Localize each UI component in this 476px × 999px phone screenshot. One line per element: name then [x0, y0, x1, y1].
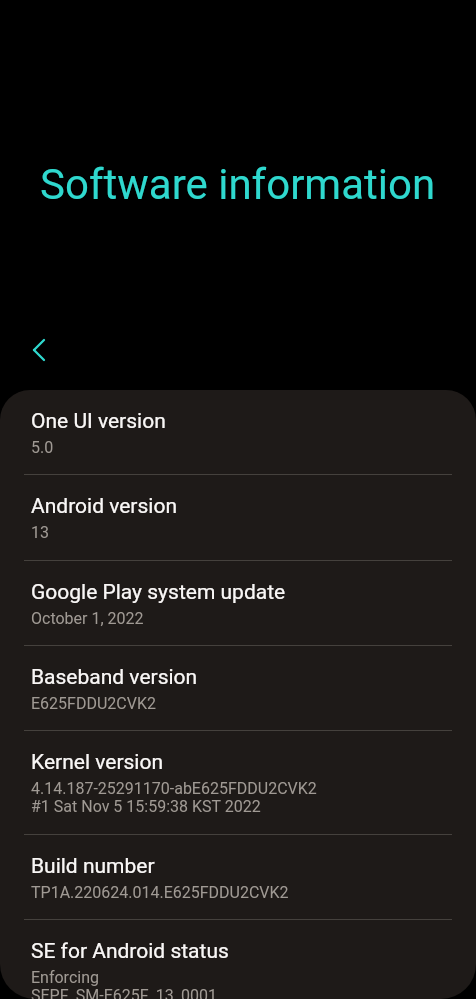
button[interactable]: Google Play system update: [0, 561, 476, 646]
staticText: Build number: [31, 854, 155, 879]
button[interactable]: Baseband version: [0, 646, 476, 731]
staticText: 13: [31, 523, 49, 542]
staticText: Baseband version: [31, 665, 198, 690]
staticText: #1 Sat Nov 5 15:59:38 KST 2022: [31, 797, 261, 816]
button[interactable]: Navigate up: [15, 326, 63, 374]
staticText: SEPF_SM-E625F_13_0001: [31, 986, 217, 999]
button[interactable]: Kernel version: [0, 731, 476, 835]
staticText: 4.14.187-25291170-abE625FDDU2CVK2: [31, 779, 317, 798]
staticText: SE for Android status: [31, 939, 229, 964]
button[interactable]: SE for Android status: [0, 920, 476, 999]
staticText: Android version: [31, 494, 177, 519]
button[interactable]: Android version: [0, 475, 476, 561]
button[interactable]: Build number: [0, 835, 476, 920]
staticText: Kernel version: [31, 750, 164, 775]
staticText: Enforcing: [31, 968, 99, 987]
staticText: Google Play system update: [31, 580, 286, 605]
staticText: 5.0: [31, 438, 54, 457]
staticText: TP1A.220624.014.E625FDDU2CVK2: [31, 883, 289, 902]
staticText: Software information: [40, 160, 436, 209]
staticText: October 1, 2022: [31, 609, 144, 628]
staticText: One UI version: [31, 409, 166, 434]
button[interactable]: One UI version: [0, 390, 476, 475]
staticText: E625FDDU2CVK2: [31, 694, 156, 713]
